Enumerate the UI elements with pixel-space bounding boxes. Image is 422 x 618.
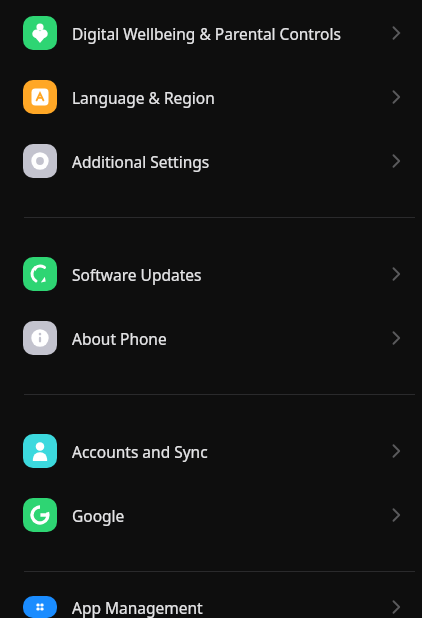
other: Open Accounts and Sync bbox=[386, 440, 408, 462]
staticText: Software Updates bbox=[72, 264, 202, 285]
other: Open App Management bbox=[386, 596, 408, 618]
other: Open Google bbox=[386, 504, 408, 526]
staticText: Google bbox=[72, 505, 125, 526]
button[interactable]: App Management bbox=[0, 596, 422, 618]
button[interactable]: Digital Wellbeing & Parental Controls bbox=[0, 1, 422, 65]
button[interactable]: Accounts and Sync bbox=[0, 419, 422, 483]
button[interactable]: Software Updates bbox=[0, 242, 422, 306]
staticText: Accounts and Sync bbox=[72, 441, 208, 462]
button[interactable]: Additional Settings bbox=[0, 129, 422, 193]
staticText: App Management bbox=[72, 597, 203, 618]
button[interactable]: About Phone bbox=[0, 306, 422, 370]
other: Open Additional Settings bbox=[386, 150, 408, 172]
other: Open About Phone bbox=[386, 327, 408, 349]
staticText: Digital Wellbeing & Parental Controls bbox=[72, 23, 341, 44]
button[interactable]: Google bbox=[0, 483, 422, 547]
staticText: Additional Settings bbox=[72, 151, 210, 172]
staticText: About Phone bbox=[72, 328, 167, 349]
other: Open Digital Wellbeing & Parental Contro… bbox=[386, 22, 408, 44]
staticText: Language & Region bbox=[72, 87, 215, 108]
button[interactable]: Language & Region bbox=[0, 65, 422, 129]
other: Open Software Updates bbox=[386, 263, 408, 285]
other: Open Language & Region bbox=[386, 86, 408, 108]
